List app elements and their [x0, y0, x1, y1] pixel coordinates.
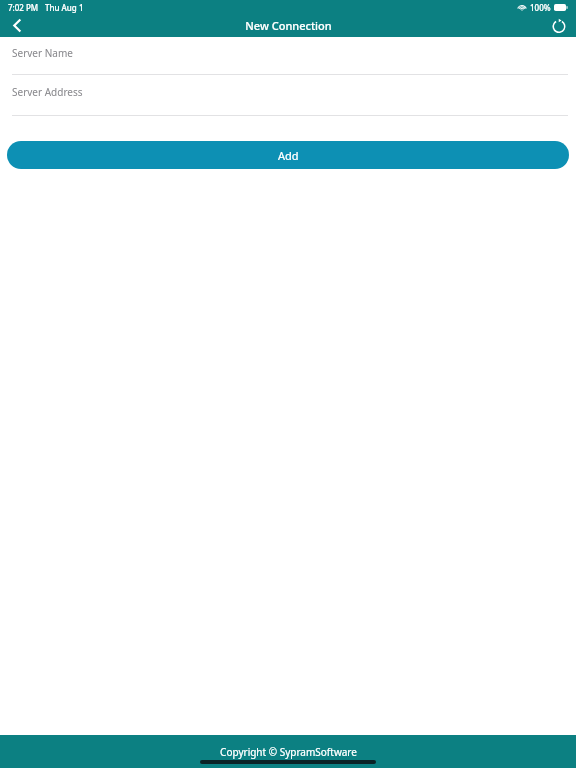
staticText: Server Address — [12, 85, 83, 99]
button[interactable]: Server Address — [0, 75, 576, 116]
staticText: New Connection — [245, 18, 332, 33]
button[interactable]: Server Name — [0, 37, 576, 75]
button[interactable]: Add — [7, 141, 569, 169]
staticText: Add — [278, 148, 299, 163]
staticText: 100% — [530, 2, 551, 13]
button[interactable]: Refresh — [542, 14, 576, 37]
staticText: Thu Aug 1 — [45, 2, 84, 13]
staticText: Copyright © SypramSoftware — [220, 745, 357, 759]
button[interactable]: Back — [0, 14, 34, 37]
staticText: Server Name — [12, 46, 73, 60]
staticText: 7:02 PM — [8, 2, 39, 13]
